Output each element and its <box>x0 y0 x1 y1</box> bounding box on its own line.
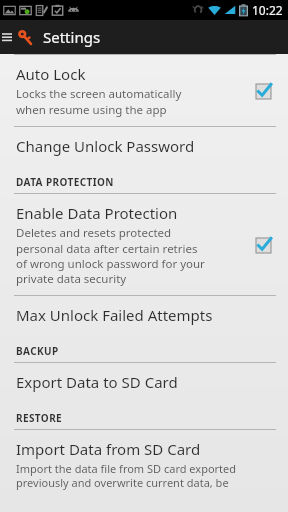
button[interactable]: Max Unlock Failed Attempts <box>0 296 288 334</box>
staticText: 10:22 <box>252 2 283 18</box>
staticText: Auto Lock <box>16 64 86 84</box>
staticText: Change Unlock Password <box>16 136 195 156</box>
button[interactable]: Import Data from SD Card <box>0 430 288 500</box>
staticText: Settings <box>43 27 101 47</box>
button[interactable]: Toggle setting <box>248 230 278 260</box>
staticText: DATA PROTECTION <box>16 175 114 189</box>
button[interactable]: Auto Lock <box>0 55 288 126</box>
staticText: Import the data file from SD card export… <box>16 461 237 491</box>
staticText: RESTORE <box>16 411 63 425</box>
staticText: Locks the screen automatically when resu… <box>16 86 182 117</box>
button[interactable]: Change Unlock Password <box>0 127 288 165</box>
staticText: Deletes and resets protected personal da… <box>16 225 205 286</box>
staticText: Enable Data Protection <box>16 203 178 223</box>
button[interactable]: Enable Data Protection <box>0 194 288 295</box>
button[interactable]: Export Data to SD Card <box>0 363 288 401</box>
staticText: BACKUP <box>16 344 59 358</box>
other: App icon <box>15 27 35 47</box>
staticText: Export Data to SD Card <box>16 372 178 392</box>
staticText: Max Unlock Failed Attempts <box>16 305 213 325</box>
button[interactable]: Open navigation menu <box>0 20 14 54</box>
staticText: Import Data from SD Card <box>16 439 201 459</box>
button[interactable]: Toggle setting <box>248 76 278 106</box>
